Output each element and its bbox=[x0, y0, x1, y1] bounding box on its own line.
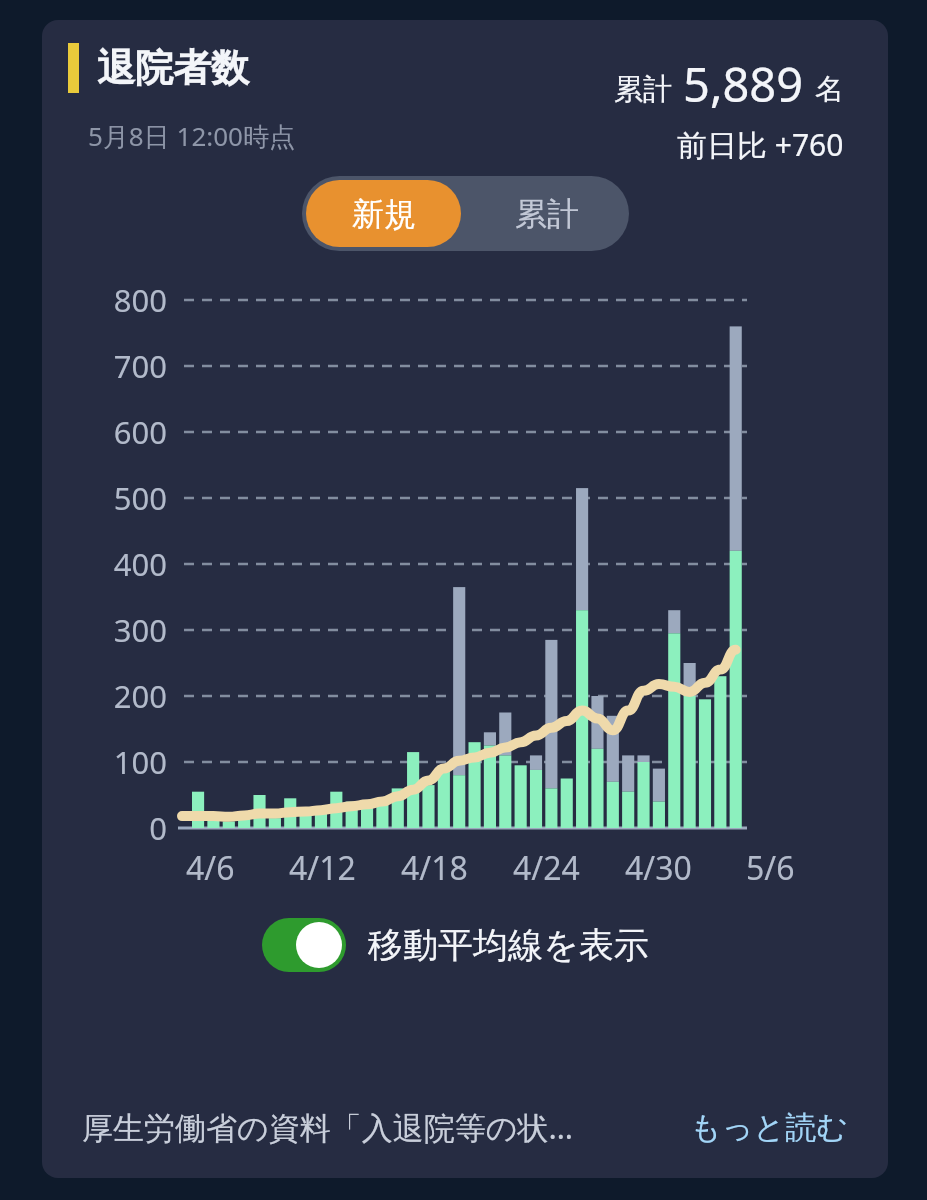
staticText: 500 bbox=[42, 477, 167, 519]
staticText: 新規 bbox=[352, 194, 416, 234]
other: Toggle moving average line bbox=[262, 918, 346, 972]
staticText: 700 bbox=[42, 345, 167, 387]
staticText: 4/12 bbox=[289, 846, 356, 890]
staticText: 名 bbox=[815, 71, 844, 108]
staticText: 退院者数 bbox=[97, 44, 249, 92]
staticText: 4/18 bbox=[401, 846, 468, 890]
staticText: 累計 bbox=[515, 194, 579, 234]
staticText: 前日比 +760 bbox=[677, 124, 844, 160]
button[interactable]: 新規 bbox=[306, 180, 461, 247]
staticText: 400 bbox=[42, 543, 167, 585]
staticText: 600 bbox=[42, 411, 167, 453]
staticText: 200 bbox=[42, 675, 167, 717]
button[interactable]: Toggle moving average line bbox=[262, 900, 888, 990]
staticText: 厚生労働省の資料「入退院等の状… bbox=[82, 1106, 573, 1148]
staticText: 300 bbox=[42, 609, 167, 651]
staticText: もっと読む bbox=[690, 1108, 848, 1147]
staticText: 800 bbox=[42, 279, 167, 321]
staticText: 4/30 bbox=[625, 846, 692, 890]
staticText: 4/24 bbox=[513, 846, 580, 890]
button[interactable]: もっと読む bbox=[690, 1108, 848, 1147]
staticText: 累計 bbox=[614, 71, 672, 108]
staticText: 4/6 bbox=[186, 846, 235, 890]
staticText: 移動平均線を表示 bbox=[368, 923, 649, 967]
staticText: 100 bbox=[42, 741, 167, 783]
staticText: 5月8日 12:00時点 bbox=[88, 118, 295, 154]
staticText: 0 bbox=[42, 807, 167, 849]
staticText: 5/6 bbox=[746, 846, 795, 890]
staticText: 5,889 bbox=[683, 52, 804, 116]
button[interactable]: 累計 bbox=[469, 180, 625, 247]
